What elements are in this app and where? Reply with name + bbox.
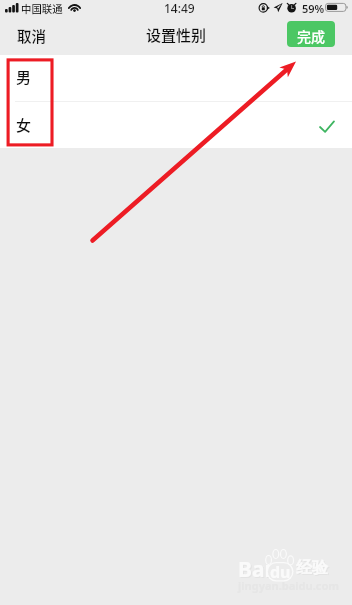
staticText: 男 xyxy=(16,66,32,88)
staticText: du xyxy=(270,561,291,583)
staticText: 59% xyxy=(302,1,325,16)
staticText: Bai xyxy=(238,555,271,584)
staticText: jingyan.baidu.com xyxy=(238,578,340,593)
staticText: 14:49 xyxy=(164,0,195,16)
button[interactable]: 女 xyxy=(0,102,352,148)
staticText: 取消 xyxy=(17,25,46,44)
staticText: 经验 xyxy=(296,558,328,578)
staticText: Bai xyxy=(239,556,272,585)
staticText: 经验 xyxy=(297,559,329,579)
button[interactable]: 男 xyxy=(0,55,352,101)
staticText: 中国联通 xyxy=(21,1,63,16)
staticText: 女 xyxy=(16,114,32,136)
staticText: 设置性别 xyxy=(146,24,207,46)
button[interactable]: 完成 xyxy=(287,21,335,47)
staticText: 完成 xyxy=(297,26,325,46)
button[interactable]: 取消 xyxy=(6,20,59,55)
